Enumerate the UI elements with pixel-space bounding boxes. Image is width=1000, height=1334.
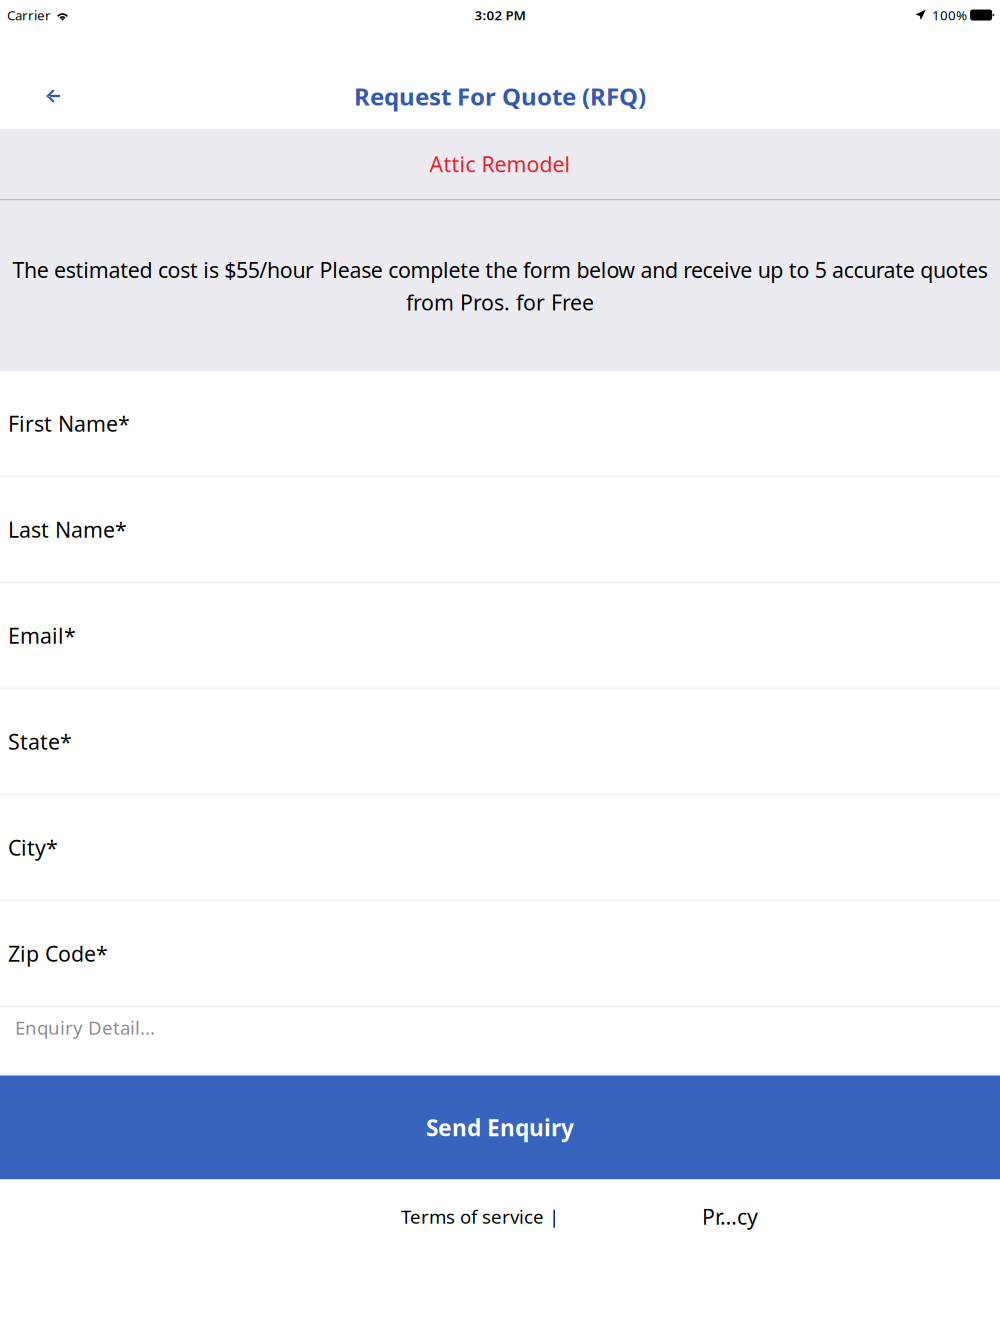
staticText: State* xyxy=(8,727,72,756)
staticText: Pr…cy xyxy=(702,1202,758,1231)
staticText: Enquiry Detail... xyxy=(15,1015,155,1040)
button[interactable]: City* xyxy=(0,795,1000,899)
button[interactable]: Last Name* xyxy=(0,477,1000,581)
staticText: First Name* xyxy=(8,409,130,438)
staticText: The estimated cost is $55/hour Please co… xyxy=(12,256,988,284)
button[interactable]: Terms of service | xyxy=(401,1201,559,1231)
staticText: 100% xyxy=(932,6,967,24)
button[interactable]: Email* xyxy=(0,583,1000,687)
staticText: Send Enquiry xyxy=(426,1112,574,1142)
button[interactable]: Enquiry Detail... xyxy=(0,1007,1000,1073)
button[interactable]: Pr…cy xyxy=(702,1201,758,1231)
staticText: Terms of service | xyxy=(401,1204,559,1229)
staticText: Last Name* xyxy=(8,515,127,544)
button[interactable]: First Name* xyxy=(0,371,1000,475)
staticText: 3:02 PM xyxy=(474,6,525,24)
staticText: Attic Remodel xyxy=(429,150,570,178)
staticText: Zip Code* xyxy=(8,939,108,968)
staticText: Carrier xyxy=(7,6,51,24)
staticText: from Pros. for Free xyxy=(406,288,594,316)
staticText: Request For Quote (RFQ) xyxy=(354,80,646,112)
staticText: Email* xyxy=(8,621,76,650)
button[interactable]: Back xyxy=(0,30,100,129)
staticText: City* xyxy=(8,833,58,862)
button[interactable]: Zip Code* xyxy=(0,901,1000,1005)
button[interactable]: Send Enquiry xyxy=(0,1075,1000,1179)
button[interactable]: State* xyxy=(0,689,1000,793)
